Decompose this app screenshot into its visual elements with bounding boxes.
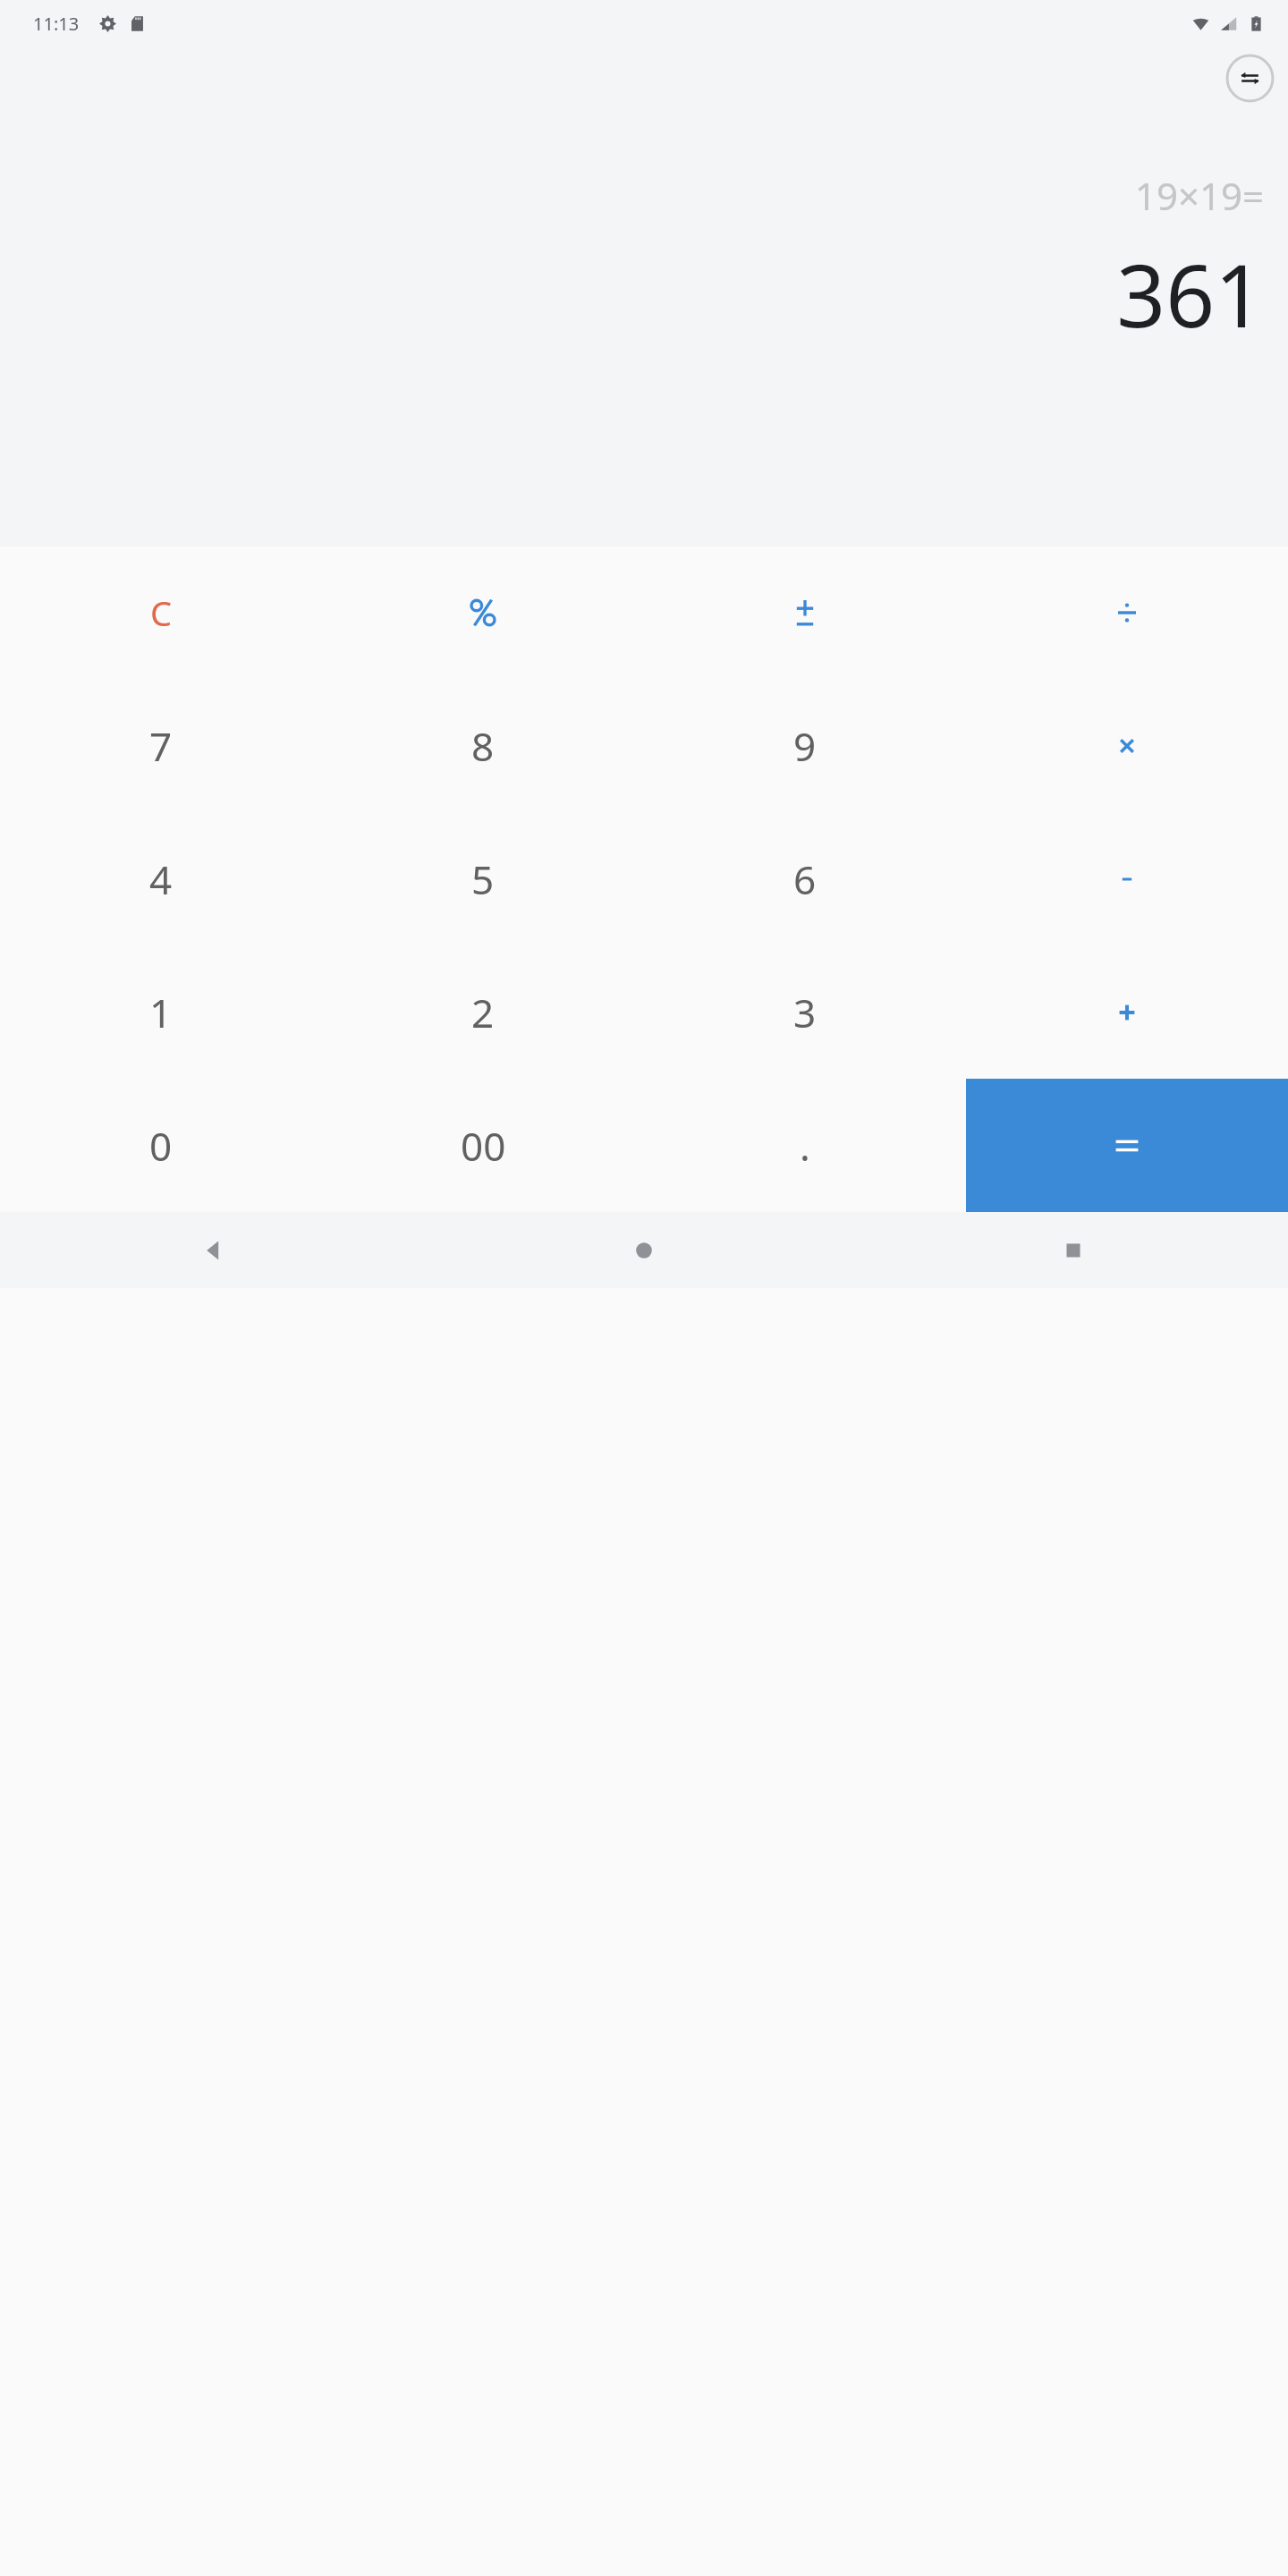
staticText: C — [150, 589, 173, 636]
staticText: 4 — [149, 852, 173, 906]
staticText: 11:13 — [33, 12, 80, 36]
other: Plus minus — [787, 595, 823, 631]
staticText: 00 — [461, 1119, 506, 1173]
button[interactable]: Swap — [1225, 54, 1275, 103]
staticText: 3 — [793, 986, 817, 1039]
button[interactable]: Multiply — [966, 679, 1288, 812]
button[interactable]: 0 — [0, 1079, 322, 1212]
button[interactable]: Equals — [966, 1079, 1288, 1212]
other: Minus — [1109, 861, 1145, 897]
button[interactable]: 5 — [322, 812, 644, 945]
other: Divide — [1109, 595, 1145, 631]
staticText: 6 — [793, 852, 817, 906]
other: Multiply — [1109, 728, 1145, 764]
other: Plus — [1109, 995, 1145, 1030]
staticText: 361 — [0, 235, 1264, 352]
button[interactable]: 9 — [644, 679, 966, 812]
staticText: . — [800, 1119, 810, 1173]
button[interactable]: Plus — [966, 945, 1288, 1079]
staticText: 0 — [149, 1119, 173, 1173]
staticText: 9 — [793, 719, 817, 773]
staticText: 8 — [471, 719, 495, 773]
staticText: 1 — [149, 986, 173, 1039]
button[interactable]: Home — [429, 1212, 859, 1288]
staticText: 2 — [471, 986, 495, 1039]
button[interactable]: 00 — [322, 1079, 644, 1212]
button[interactable]: Percent — [322, 547, 644, 679]
button[interactable]: 1 — [0, 945, 322, 1079]
button[interactable]: 2 — [322, 945, 644, 1079]
other: Percent — [465, 595, 501, 631]
button[interactable]: 8 — [322, 679, 644, 812]
button[interactable]: . — [644, 1079, 966, 1212]
button[interactable]: C — [0, 547, 322, 679]
button[interactable]: Back — [0, 1212, 429, 1288]
staticText: 19×19= — [0, 170, 1264, 221]
button[interactable]: Recent apps — [859, 1212, 1288, 1288]
staticText: 5 — [471, 852, 495, 906]
button[interactable]: Plus minus — [644, 547, 966, 679]
button[interactable]: Minus — [966, 812, 1288, 945]
staticText: 7 — [149, 719, 173, 773]
button[interactable]: 7 — [0, 679, 322, 812]
button[interactable]: Divide — [966, 547, 1288, 679]
button[interactable]: 6 — [644, 812, 966, 945]
button[interactable]: 4 — [0, 812, 322, 945]
button[interactable]: 3 — [644, 945, 966, 1079]
